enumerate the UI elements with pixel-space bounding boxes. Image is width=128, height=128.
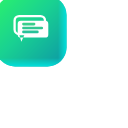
button[interactable]: Messages app icon bbox=[0, 0, 128, 128]
